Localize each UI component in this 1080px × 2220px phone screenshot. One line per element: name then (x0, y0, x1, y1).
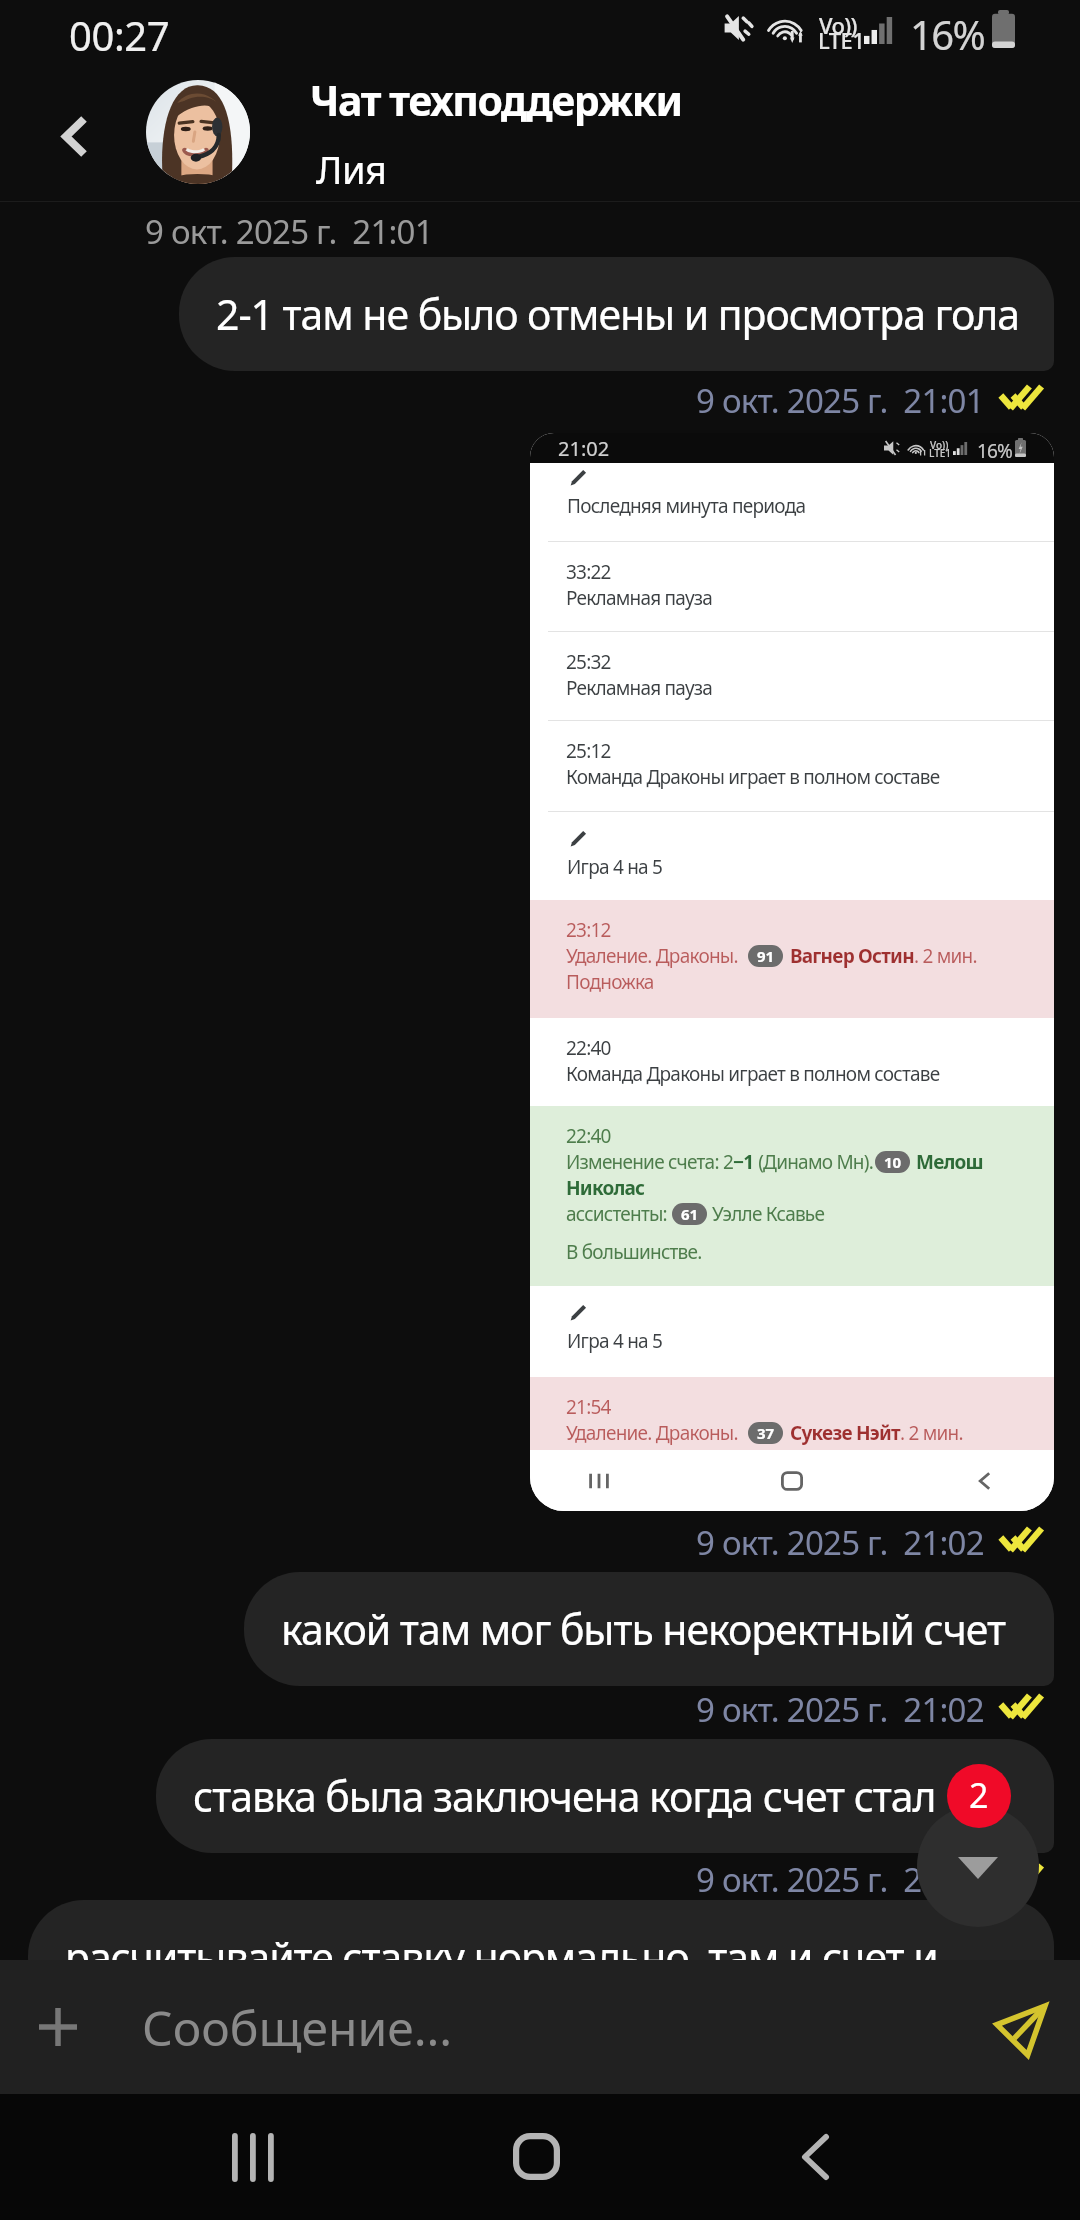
staticText: 9 окт. 2025 г. 21:02 (696, 1520, 984, 1565)
staticText: Vo)) (819, 10, 857, 40)
staticText: Удаление. Драконы. (566, 1420, 738, 1446)
button[interactable]: Back (29, 90, 121, 182)
staticText: LTE1 (818, 25, 865, 55)
button[interactable]: Contact avatar (146, 80, 250, 184)
staticText: Последняя минута периода (567, 493, 806, 519)
staticText: Команда Драконы играет в полном составе (566, 1061, 940, 1087)
staticText: Подножка (566, 969, 654, 995)
staticText: З (567, 1448, 578, 1474)
button[interactable]: Scroll to bottom (917, 1805, 1039, 1927)
staticText: 25:32 (566, 649, 611, 675)
staticText: −1 (733, 1149, 754, 1175)
button[interactable]: 2-1 там не было отмены и просмотра гола (179, 257, 1054, 371)
button[interactable]: Attach (17, 1986, 99, 2068)
button[interactable]: Send (978, 1987, 1064, 2073)
staticText: Сукезе Нэйт (790, 1420, 900, 1446)
staticText: . 2 мин. (914, 943, 977, 969)
button[interactable]: Screenshot attachment (530, 433, 1054, 1511)
staticText: Лия (316, 143, 387, 195)
staticText: Рекламная пауза (566, 675, 713, 701)
button[interactable]: Back (768, 2110, 862, 2204)
staticText: 22:40 (566, 1035, 611, 1061)
staticText: 9 окт. 2025 г. 21:02 (696, 1687, 984, 1732)
staticText: 9 окт. 2025 г. 21:01 (145, 209, 433, 254)
staticText: Уэлле Ксавье (712, 1201, 825, 1227)
staticText: какой там мог быть некоректный счет (281, 1601, 1006, 1657)
staticText: Сообщение... (142, 1995, 453, 2060)
staticText: 37 (757, 1423, 775, 1443)
staticText: Удаление. Драконы. (566, 943, 738, 969)
staticText: ставка была заключена когда счет стал (193, 1768, 936, 1824)
staticText: 16% (977, 438, 1012, 464)
staticText: 10 (884, 1152, 902, 1172)
button[interactable]: Home (489, 2109, 583, 2203)
staticText: Изменение счета: 2 (566, 1149, 733, 1175)
staticText: Рекламная пауза (566, 585, 713, 611)
staticText: 33:22 (566, 559, 611, 585)
button[interactable]: расчитывайте ставку нормально, там и сче… (28, 1900, 1054, 2014)
staticText: Николас (566, 1175, 645, 1201)
staticText: Команда Драконы играет в полном составе (566, 764, 940, 790)
staticText: 2-1 там не было отмены и просмотра гола (216, 286, 1020, 342)
staticText: 16% (910, 7, 985, 61)
staticText: ассистенты: (566, 1201, 667, 1227)
staticText: Vo)) (930, 438, 949, 452)
button[interactable]: Recent apps (206, 2110, 300, 2204)
staticText: расчитывайте ставку нормально, там и сче… (65, 1929, 938, 1985)
button[interactable]: какой там мог быть некоректный счет (244, 1572, 1054, 1686)
staticText: 21:02 (558, 435, 610, 462)
staticText: 9 окт. 2025 г. 21:01 (696, 378, 984, 423)
staticText: 00:27 (69, 8, 170, 62)
staticText: 91 (757, 946, 775, 966)
staticText: 2 (969, 1772, 989, 1818)
staticText: 61 (681, 1204, 699, 1224)
staticText: В большинстве. (566, 1239, 702, 1265)
staticText: 21:54 (566, 1394, 611, 1420)
staticText: 23:12 (566, 917, 611, 943)
staticText: Игра 4 на 5 (567, 1328, 663, 1354)
staticText: Мелош (916, 1149, 983, 1175)
staticText: Игра 4 на 5 (567, 854, 663, 880)
staticText: Вагнер Остин (790, 943, 914, 969)
staticText: 9 окт. 2025 г. 21:02 (696, 1857, 984, 1902)
staticText: LTE1 (929, 446, 952, 460)
staticText: (Динамо Мн). (754, 1149, 874, 1175)
button[interactable]: ставка была заключена когда счет стал (156, 1739, 1054, 1853)
staticText: Чат техподдержки (310, 72, 682, 128)
staticText: . 2 мин. (900, 1420, 963, 1446)
staticText: 25:12 (566, 738, 611, 764)
staticText: 22:40 (566, 1123, 611, 1149)
